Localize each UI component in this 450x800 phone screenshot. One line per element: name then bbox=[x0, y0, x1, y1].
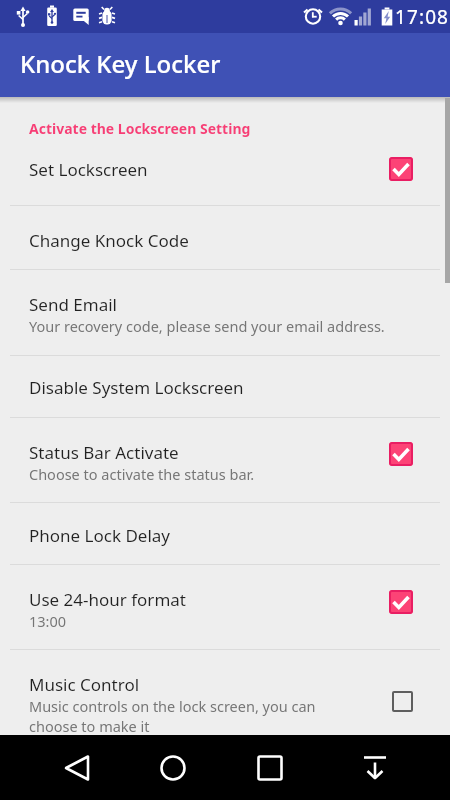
button[interactable]: Activate the Lockscreen Setting bbox=[0, 97, 450, 205]
button[interactable] bbox=[389, 442, 413, 466]
staticText: Music Control bbox=[29, 673, 140, 696]
button[interactable]: Change Knock Code bbox=[0, 206, 450, 269]
button[interactable] bbox=[153, 748, 193, 788]
staticText: Knock Key Locker bbox=[20, 47, 221, 80]
staticText: Music controls on the lock screen, you c… bbox=[29, 696, 316, 716]
button[interactable]: Use 24-hour format bbox=[0, 565, 450, 649]
button[interactable] bbox=[389, 157, 413, 181]
button[interactable]: Phone Lock Delay bbox=[0, 503, 450, 564]
staticText: Your recovery code, please send your ema… bbox=[29, 316, 385, 336]
staticText: Disable System Lockscreen bbox=[29, 376, 244, 399]
button[interactable]: Music Control bbox=[0, 650, 450, 735]
staticText: Change Knock Code bbox=[29, 229, 189, 252]
staticText: Activate the Lockscreen Setting bbox=[29, 119, 251, 138]
button[interactable] bbox=[355, 748, 395, 788]
button[interactable] bbox=[389, 590, 413, 614]
staticText: Use 24-hour format bbox=[29, 588, 186, 611]
button[interactable] bbox=[58, 748, 98, 788]
button[interactable] bbox=[392, 691, 413, 712]
staticText: 17:08 bbox=[395, 4, 450, 30]
button[interactable]: Send Email bbox=[0, 270, 450, 355]
staticText: Send Email bbox=[29, 293, 117, 316]
staticText: choose to make it bbox=[29, 716, 150, 735]
staticText: Set Lockscreen bbox=[29, 158, 148, 181]
staticText: Phone Lock Delay bbox=[29, 524, 171, 547]
button[interactable] bbox=[250, 748, 290, 788]
button[interactable]: Status Bar Activate bbox=[0, 418, 450, 502]
staticText: 13:00 bbox=[29, 611, 67, 631]
staticText: Status Bar Activate bbox=[29, 441, 179, 464]
staticText: Choose to activate the status bar. bbox=[29, 464, 255, 484]
button[interactable]: Disable System Lockscreen bbox=[0, 356, 450, 417]
